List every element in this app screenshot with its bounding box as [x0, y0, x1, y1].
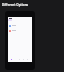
button[interactable]: Alerts [21, 57, 25, 62]
button[interactable]: Home [9, 57, 13, 62]
button[interactable] [8, 28, 32, 33]
button[interactable] [8, 23, 32, 28]
button[interactable]: Profile [25, 57, 29, 62]
button[interactable]: Explore [17, 57, 21, 62]
staticText: Different Options [2, 3, 29, 7]
